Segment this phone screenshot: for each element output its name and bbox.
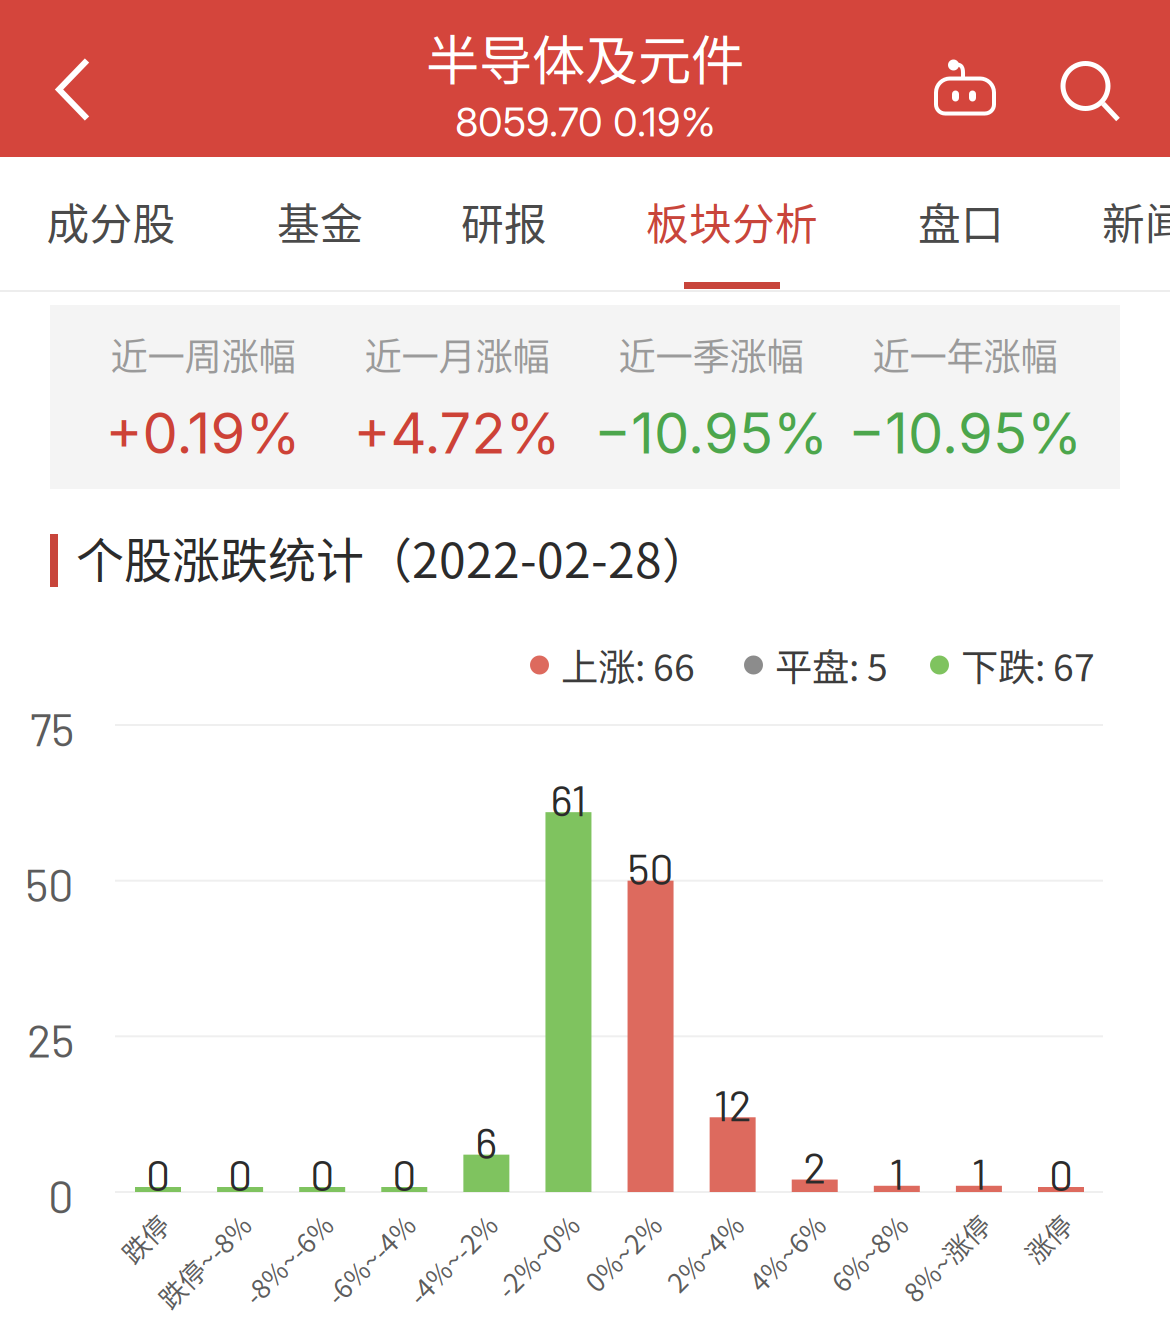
staticText: 4%~6% [761, 1285, 856, 1323]
staticText: -6%~-4% [332, 1285, 445, 1323]
button[interactable]: 基金 [220, 154, 420, 289]
staticText: -4%~-2% [414, 1285, 527, 1323]
staticText: 0 [228, 1148, 252, 1200]
staticText: −10.95% [594, 399, 828, 467]
button[interactable]: 研报 [404, 154, 604, 289]
staticText: 成分股 [46, 191, 175, 252]
staticText: 跌停 [145, 1285, 199, 1323]
staticText: 6%~8% [843, 1285, 938, 1323]
staticText: 跌停~-8% [163, 1285, 281, 1323]
staticText: 0 [146, 1148, 170, 1200]
staticText: 板块分析 [646, 191, 818, 252]
staticText: −10.95% [848, 399, 1082, 467]
button[interactable]: 成分股 [11, 154, 211, 289]
staticText: 8%~涨停 [911, 1285, 1020, 1323]
staticText: 近一季涨幅 [618, 327, 803, 381]
staticText: 1 [889, 1147, 904, 1198]
staticText: 0 [48, 1168, 74, 1222]
staticText: 上涨: 66 [561, 638, 695, 692]
staticText: 75 [30, 701, 74, 755]
staticText: 基金 [277, 191, 363, 252]
staticText: 近一周涨幅 [110, 327, 295, 381]
button[interactable]: AI assistant [910, 9, 1020, 166]
staticText: 6 [475, 1116, 497, 1167]
staticText: 盘口 [918, 191, 1004, 252]
staticText: 0%~2% [596, 1285, 691, 1323]
staticText: 个股涨跌统计（2022-02-28） [76, 522, 710, 592]
staticText: 研报 [461, 191, 547, 252]
staticText: 8059.70 0.19% [455, 98, 715, 146]
button[interactable]: 新闻 [1045, 154, 1170, 289]
staticText: 下跌: 67 [961, 638, 1095, 692]
staticText: 50 [25, 856, 74, 911]
staticText: 1 [971, 1147, 986, 1198]
staticText: 近一年涨幅 [872, 327, 1057, 381]
staticText: 半导体及元件 [426, 18, 744, 96]
staticText: 2%~4% [679, 1285, 774, 1323]
staticText: 0 [310, 1148, 334, 1200]
staticText: +0.19% [105, 399, 300, 467]
staticText: 2 [803, 1141, 826, 1192]
staticText: 12 [714, 1079, 752, 1130]
button[interactable]: 盘口 [861, 154, 1061, 289]
staticText: 0 [392, 1148, 416, 1200]
staticText: 0 [1049, 1148, 1073, 1200]
staticText: -8%~-6% [250, 1285, 363, 1323]
button[interactable]: Search [1038, 15, 1148, 172]
button[interactable]: Back [19, 11, 129, 168]
staticText: +4.72% [353, 399, 560, 467]
staticText: 新闻 [1102, 191, 1170, 252]
staticText: 25 [27, 1012, 74, 1066]
staticText: -2%~0% [505, 1285, 609, 1323]
staticText: 近一月涨幅 [364, 327, 549, 381]
button[interactable]: 板块分析 [632, 154, 832, 289]
staticText: 61 [550, 774, 586, 825]
staticText: 平盘: 5 [775, 638, 888, 692]
staticText: 50 [627, 842, 673, 893]
